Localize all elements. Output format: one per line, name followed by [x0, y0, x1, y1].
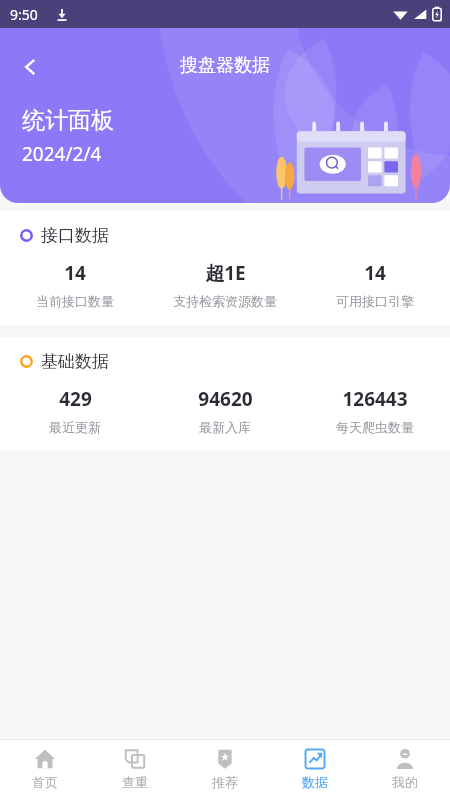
button[interactable]: 我的	[360, 740, 450, 800]
staticText: 14	[64, 260, 86, 286]
staticText: 我的	[392, 774, 418, 790]
staticText: 搜盘器数据	[180, 54, 270, 77]
staticText: 429	[59, 386, 92, 412]
staticText: 9:50	[10, 5, 38, 24]
staticText: 最近更新	[49, 419, 101, 435]
button[interactable]: 数据	[270, 740, 360, 800]
staticText: 首页	[32, 774, 58, 790]
staticText: 2024/2/4	[22, 141, 102, 167]
staticText: 可用接口引擎	[336, 293, 414, 309]
staticText: 查重	[122, 774, 148, 790]
staticText: 接口数据	[41, 225, 109, 246]
staticText: 统计面板	[22, 106, 114, 135]
staticText: 推荐	[212, 774, 238, 790]
button[interactable]: Back	[10, 46, 52, 88]
staticText: 支持检索资源数量	[173, 293, 277, 309]
staticText: 14	[364, 260, 386, 286]
staticText: 基础数据	[41, 351, 109, 372]
button[interactable]: 推荐	[180, 740, 270, 800]
staticText: 94620	[198, 386, 253, 412]
staticText: 当前接口数量	[36, 293, 114, 309]
staticText: 超1E	[205, 260, 246, 286]
button[interactable]: 查重	[90, 740, 180, 800]
button[interactable]: 首页	[0, 740, 90, 800]
staticText: 126443	[342, 386, 408, 412]
staticText: 最新入库	[199, 419, 251, 435]
staticText: 每天爬虫数量	[336, 419, 414, 435]
staticText: 数据	[302, 774, 328, 790]
